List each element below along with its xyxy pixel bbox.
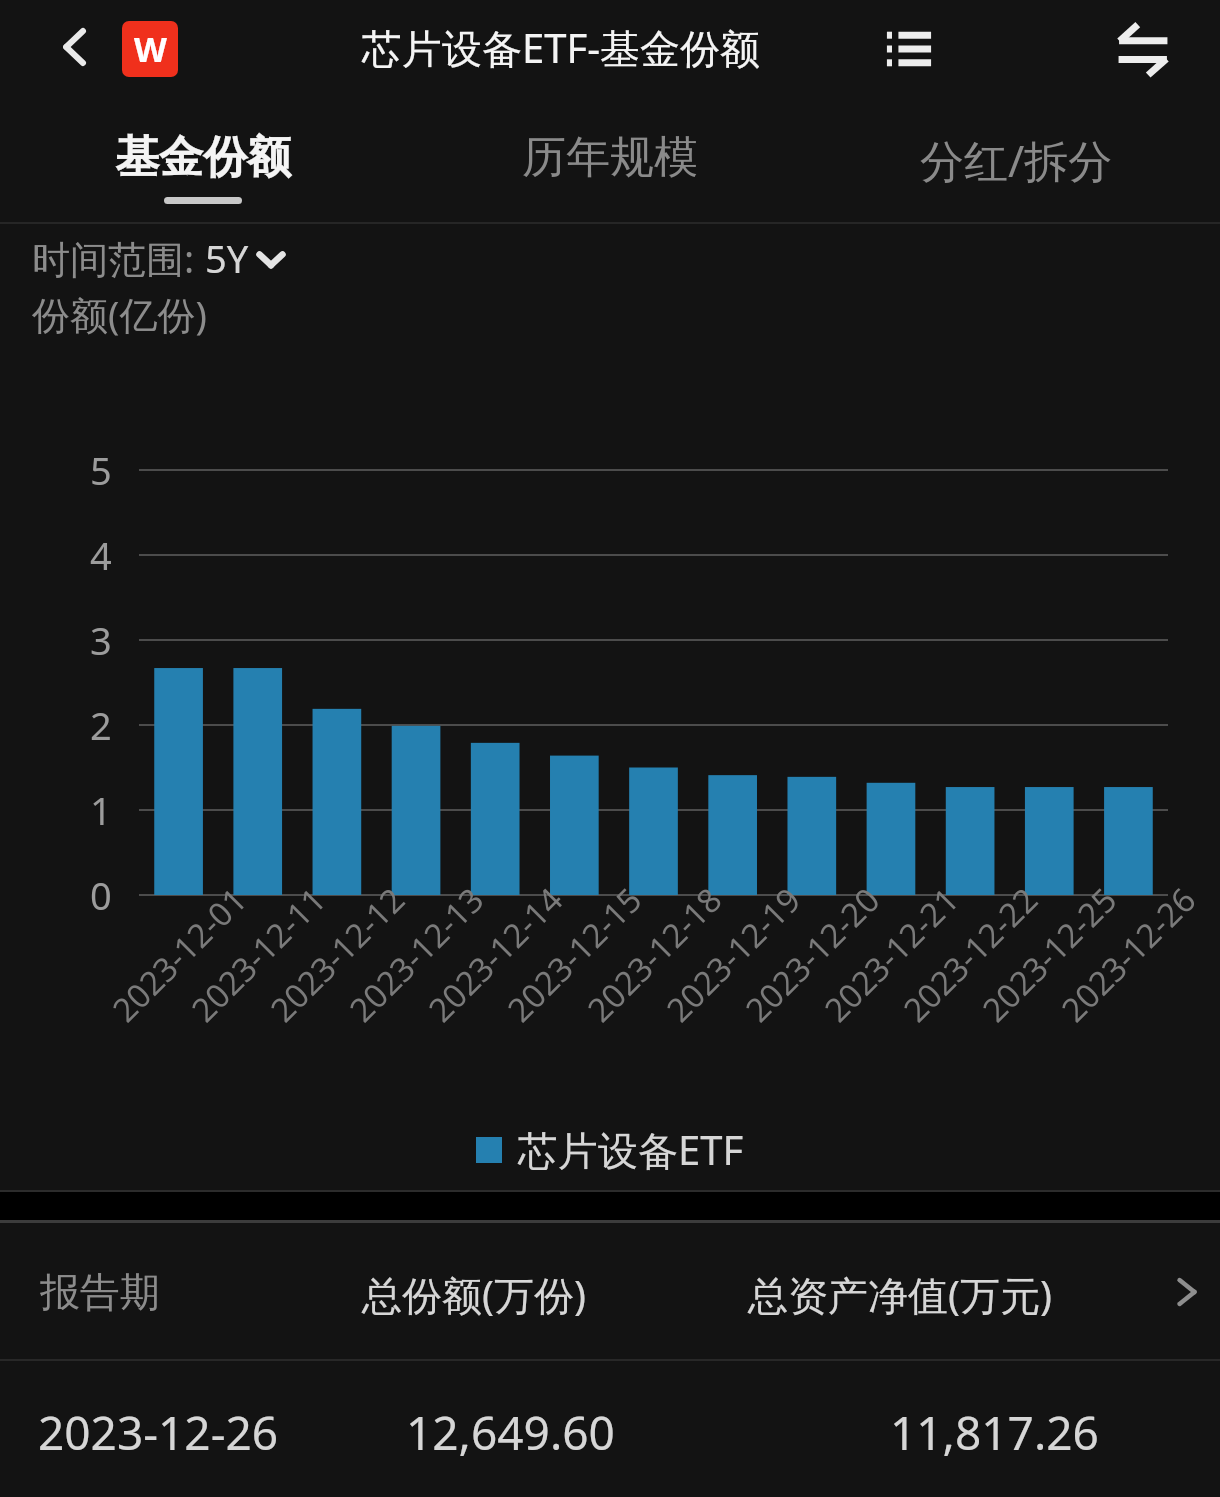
button[interactable]: 报告期 [0,1223,1220,1359]
staticText: 12,649.60 [406,1401,615,1464]
button[interactable]: 历年规模 [406,130,813,197]
button[interactable]: Back [40,12,110,82]
button[interactable]: 基金份额 [0,130,406,204]
staticText: 芯片设备ETF [518,1122,744,1177]
staticText: 2023-12-22 [864,848,1076,1061]
staticText: 2023-12-15 [468,848,680,1061]
button[interactable]: 2023-12-26 [0,1361,1220,1497]
staticText: 总资产净值(万元) [748,1267,1052,1322]
staticText: 报告期 [40,1267,160,1317]
staticText: 份额(亿份) [32,288,207,340]
staticText: 2023-12-20 [706,848,918,1061]
staticText: 3 [90,614,112,666]
button[interactable]: 分红/拆分 [813,130,1220,202]
staticText: 5Y [205,232,249,284]
staticText: 2023-12-19 [627,848,839,1061]
staticText: 11,817.26 [890,1401,1099,1464]
staticText: 2023-12-13 [310,848,522,1061]
staticText: 分红/拆分 [920,130,1113,190]
staticText: 2023-12-26 [1022,848,1220,1061]
staticText: 2023-12-21 [785,848,997,1061]
staticText: 2023-12-18 [548,848,760,1061]
staticText: 4 [90,529,112,581]
staticText: 2023-12-25 [943,848,1155,1061]
staticText: 2023-12-11 [152,848,364,1061]
button[interactable]: 5Y [205,232,289,284]
button[interactable]: List view [874,14,944,84]
staticText: 2023-12-12 [231,848,443,1061]
staticText: 2023-12-26 [38,1401,279,1464]
staticText: 2023-12-14 [389,848,601,1061]
staticText: 5 [90,444,112,496]
staticText: 总份额(万份) [362,1267,586,1322]
button[interactable]: Wind logo [122,21,178,77]
other: More columns [1170,1275,1204,1309]
button[interactable]: Switch chart [1104,10,1182,88]
staticText: 2023-12-01 [73,848,285,1061]
staticText: 0 [90,869,112,921]
staticText: 2 [90,699,112,751]
staticText: 历年规模 [522,130,698,185]
staticText: 时间范围: [32,232,205,284]
staticText: W [134,26,167,72]
staticText: 芯片设备ETF-基金份额 [362,20,761,75]
staticText: 基金份额 [115,130,291,185]
staticText: 1 [90,784,112,836]
